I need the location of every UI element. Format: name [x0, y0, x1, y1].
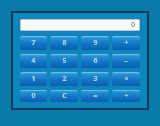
- button[interactable]: Divide: [112, 90, 140, 102]
- staticText: 3: [93, 74, 98, 84]
- staticText: C: [62, 91, 67, 101]
- button[interactable]: 9: [81, 36, 109, 50]
- button[interactable]: 5: [50, 54, 78, 68]
- button[interactable]: C: [50, 90, 78, 102]
- staticText: 8: [62, 38, 67, 48]
- button[interactable]: 8: [50, 36, 78, 50]
- button[interactable]: 0: [20, 90, 47, 102]
- staticText: 0: [131, 20, 136, 30]
- staticText: 4: [31, 56, 36, 66]
- button[interactable]: Equals: [81, 90, 109, 102]
- staticText: 7: [31, 38, 36, 48]
- button[interactable]: 2: [50, 72, 78, 86]
- button[interactable]: 7: [20, 36, 47, 50]
- button[interactable]: Minus: [112, 54, 140, 68]
- button[interactable]: Multiply: [112, 72, 140, 86]
- staticText: +: [124, 38, 129, 48]
- staticText: 1: [31, 74, 36, 84]
- staticText: 6: [93, 56, 98, 66]
- button[interactable]: 4: [20, 54, 47, 68]
- staticText: =: [93, 91, 98, 101]
- staticText: ÷: [124, 91, 129, 101]
- staticText: 5: [62, 56, 67, 66]
- button[interactable]: 1: [20, 72, 47, 86]
- staticText: 2: [62, 74, 67, 84]
- button[interactable]: 6: [81, 54, 109, 68]
- button[interactable]: 3: [81, 72, 109, 86]
- button[interactable]: Display: [21, 20, 139, 30]
- staticText: 9: [93, 38, 98, 48]
- button[interactable]: Plus: [112, 36, 140, 50]
- staticText: ×: [124, 74, 129, 84]
- staticText: 0: [31, 91, 36, 101]
- staticText: –: [124, 56, 128, 66]
